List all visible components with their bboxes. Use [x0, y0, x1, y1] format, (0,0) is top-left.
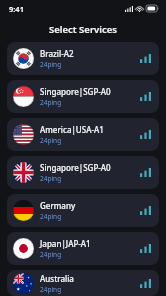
button[interactable]: Brazil-A2 [7, 42, 159, 75]
staticText: 24ping [40, 174, 62, 183]
staticText: 24ping [40, 60, 62, 69]
other: Signal strength [140, 54, 151, 63]
other: Signal strength [140, 244, 151, 253]
staticText: Germany [40, 200, 76, 211]
other: Signal strength [140, 168, 151, 177]
button[interactable]: Australia [7, 270, 159, 296]
button[interactable]: Germany [7, 194, 159, 227]
other: Signal strength [140, 130, 151, 139]
staticText: 9:41 [9, 4, 24, 14]
staticText: Select Services [49, 23, 117, 36]
other: Signal strength [140, 92, 151, 101]
button[interactable]: Singapore|SGP-A0 [7, 156, 159, 189]
staticText: Japan|JAP-A1 [40, 238, 91, 249]
staticText: Australia [40, 273, 74, 284]
staticText: 24ping [40, 98, 62, 107]
staticText: 24ping [40, 212, 62, 221]
staticText: Singapore|SGP-A0 [40, 86, 111, 97]
other: Signal strength [140, 206, 151, 215]
staticText: 24ping [40, 136, 62, 145]
button[interactable]: America|USA-A1 [7, 118, 159, 151]
staticText: 24ping [40, 285, 62, 294]
button[interactable]: Singapore|SGP-A0 [7, 80, 159, 113]
other: Signal strength [140, 279, 151, 288]
button[interactable]: Japan|JAP-A1 [7, 232, 159, 265]
staticText: 24ping [40, 250, 62, 259]
staticText: America|USA-A1 [40, 124, 104, 135]
staticText: Brazil-A2 [40, 48, 74, 59]
staticText: Singapore|SGP-A0 [40, 162, 111, 173]
